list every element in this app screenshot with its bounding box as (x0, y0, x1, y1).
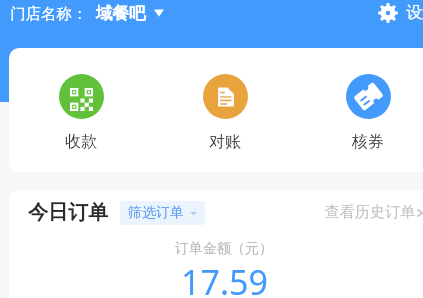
staticText: 设置 (406, 3, 423, 23)
staticText: 门店名称： (10, 4, 88, 24)
button[interactable]: Settings (378, 0, 423, 26)
staticText: 域餐吧 (96, 3, 146, 24)
staticText: 收款 (65, 132, 97, 152)
button[interactable]: 门店名称： (10, 3, 164, 24)
button[interactable]: 对账 (193, 74, 257, 152)
staticText: 筛选订单 (128, 204, 184, 222)
staticText: 查看历史订单 (325, 203, 415, 222)
other: Settings (378, 3, 398, 23)
button[interactable]: 筛选订单 (120, 201, 205, 225)
staticText: 今日订单 (28, 200, 108, 225)
staticText: 对账 (209, 132, 241, 152)
button[interactable]: 核券 (336, 74, 400, 152)
button[interactable]: 查看历史订单 (325, 203, 423, 222)
button[interactable]: 收款 (49, 74, 113, 152)
staticText: 订单金额（元） (175, 240, 273, 258)
staticText: 核券 (352, 132, 384, 152)
staticText: 17.59 (181, 259, 268, 298)
